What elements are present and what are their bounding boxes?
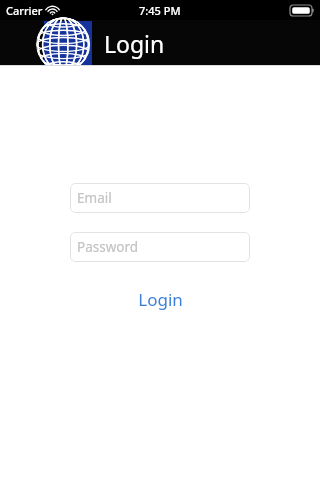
button[interactable]: Email input field xyxy=(70,183,250,213)
staticText: Login xyxy=(104,28,165,59)
staticText: Carrier xyxy=(6,3,43,18)
button[interactable]: Login xyxy=(115,284,205,314)
staticText: Email xyxy=(77,189,112,207)
staticText: Login xyxy=(138,288,183,311)
button[interactable]: Password input field xyxy=(70,232,250,262)
staticText: Password xyxy=(77,238,139,256)
staticText: 7:45 PM xyxy=(139,3,181,18)
